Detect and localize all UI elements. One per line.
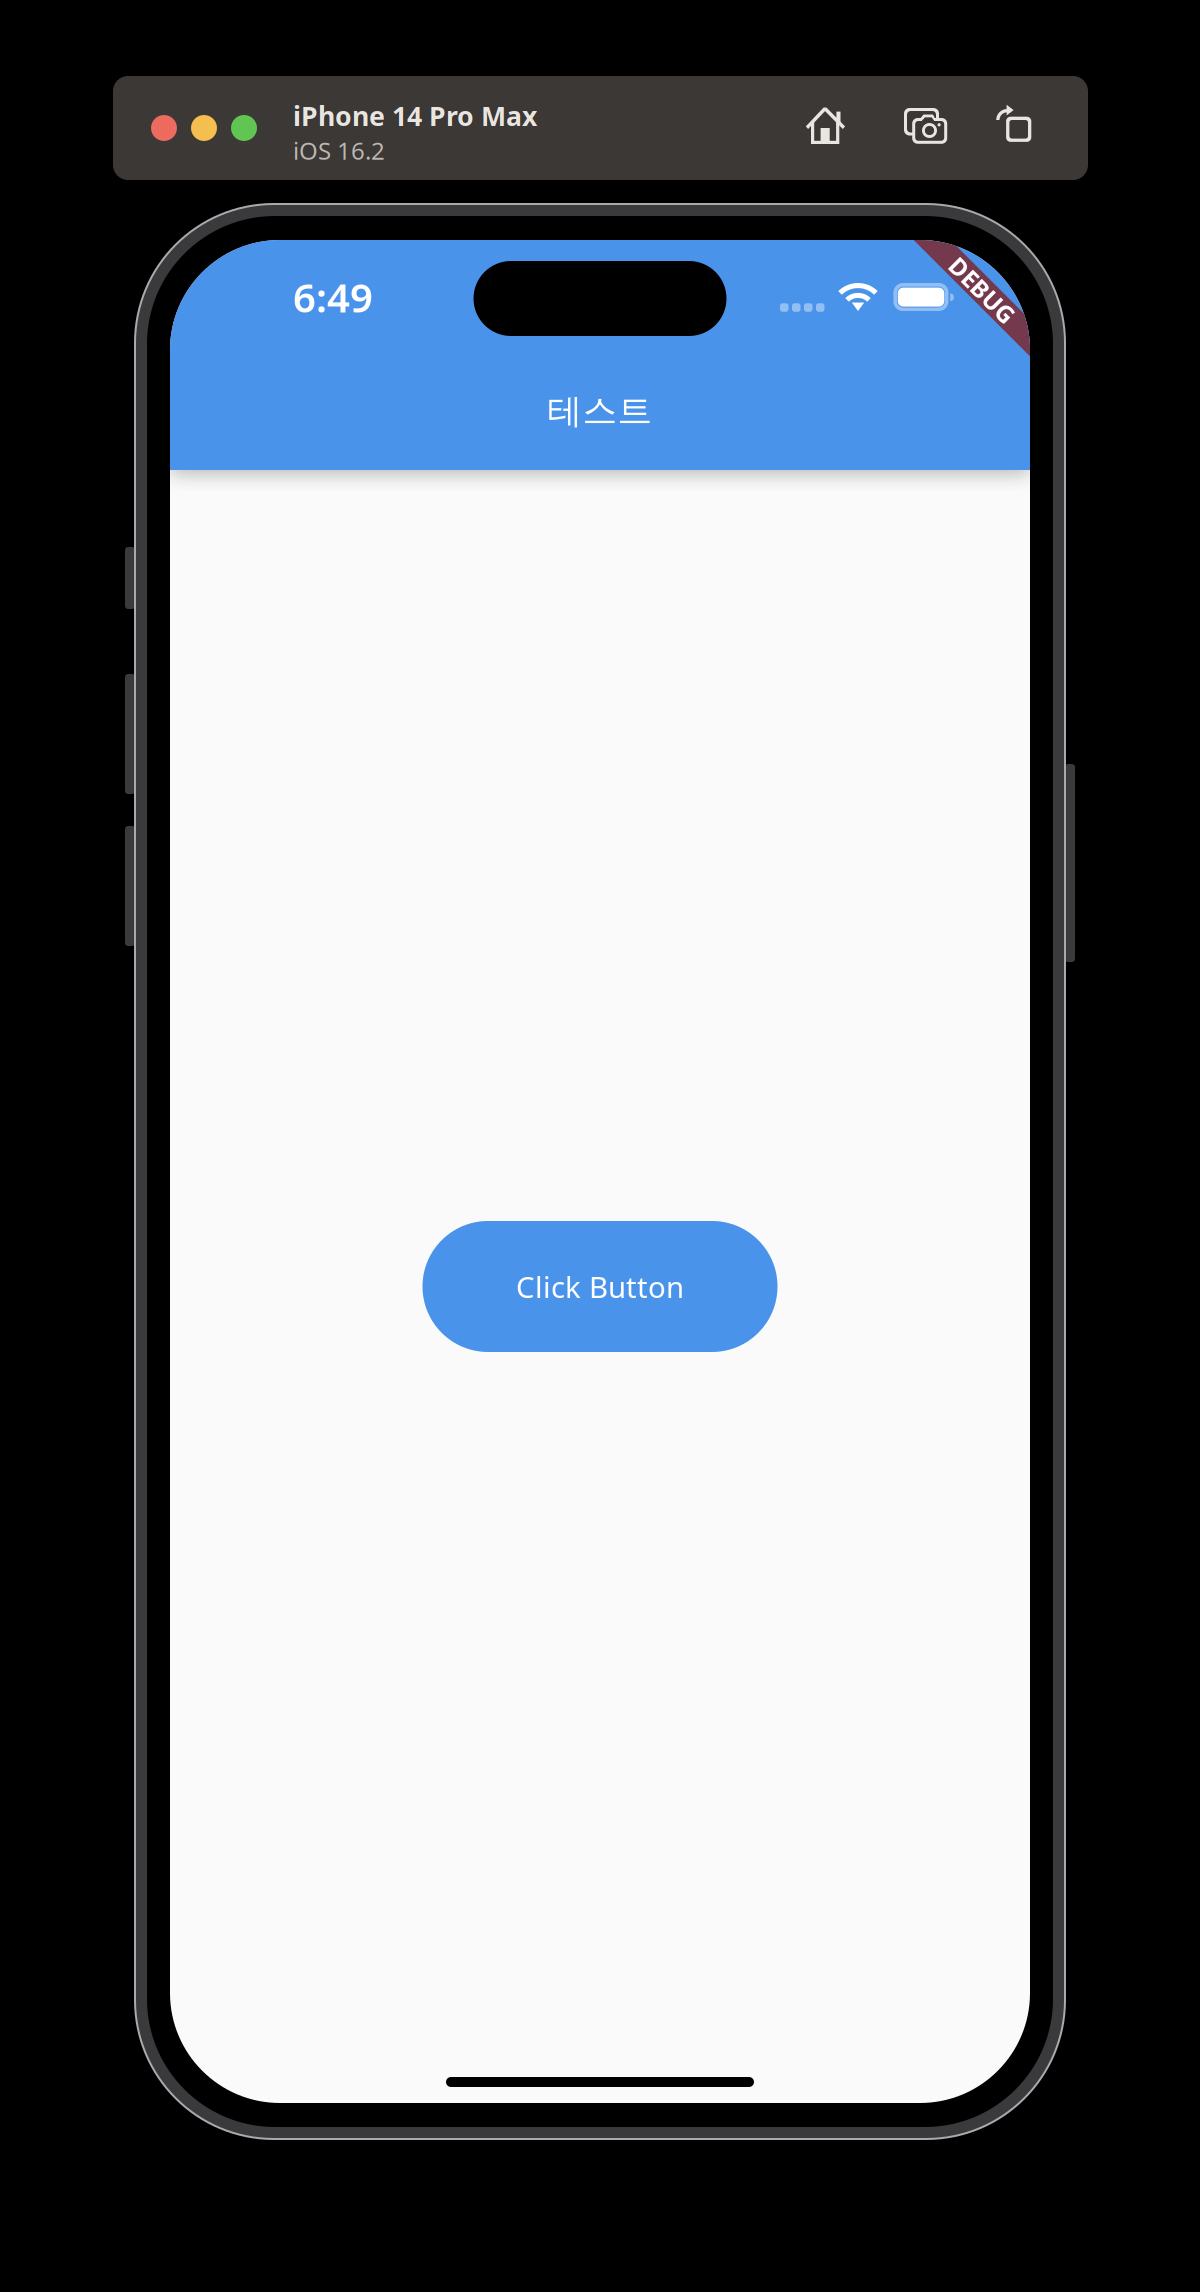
staticText: 테스트 [547,390,652,432]
staticText: 6:49 [293,270,373,323]
button[interactable]: Zoom [231,115,257,141]
button[interactable]: Click Button [422,1221,777,1352]
staticText: iOS 16.2 [293,134,385,166]
button[interactable]: Minimize [191,115,217,141]
button[interactable]: Rotate [991,101,1039,149]
button[interactable]: Screenshot [904,108,952,156]
staticText: Click Button [516,1267,684,1306]
staticText: DEBUG [941,274,1023,306]
button[interactable]: Home [801,103,849,151]
staticText: iPhone 14 Pro Max [293,98,537,133]
button[interactable]: Close [151,115,177,141]
